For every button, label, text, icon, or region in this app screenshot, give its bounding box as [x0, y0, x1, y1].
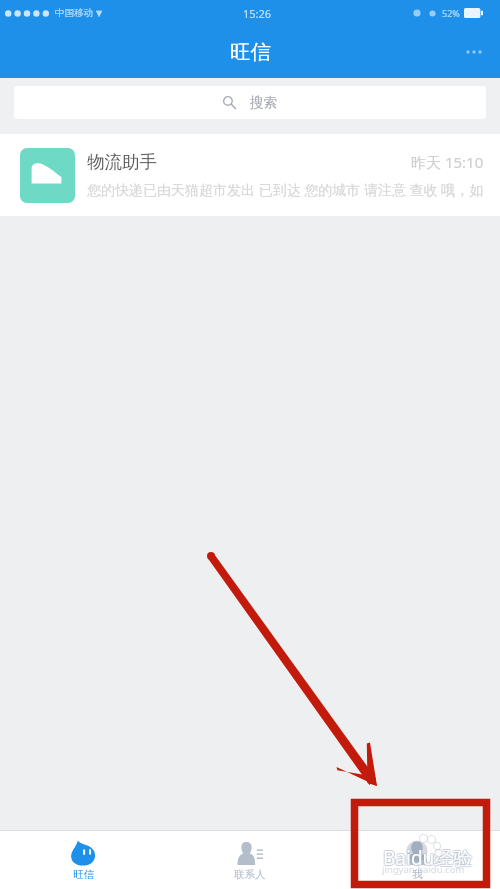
- button[interactable]: 搜索: [14, 86, 486, 119]
- staticText: 15:26: [243, 6, 272, 21]
- staticText: Baidu经验: [384, 846, 474, 872]
- staticText: Baidu经验: [383, 846, 473, 872]
- staticText: 搜索: [250, 94, 277, 111]
- staticText: 昨天 15:10: [411, 152, 484, 172]
- staticText: Baidu经验: [383, 845, 473, 871]
- staticText: ▼: [96, 9, 103, 18]
- button[interactable]: 旺信: [0, 830, 166, 889]
- button[interactable]: 我: [333, 830, 500, 889]
- staticText: 旺信: [73, 868, 94, 881]
- button[interactable]: 联系人: [166, 830, 333, 889]
- staticText: Baidu经验: [382, 845, 472, 871]
- staticText: Baidu经验: [384, 845, 474, 871]
- button[interactable]: 物流助手: [0, 134, 500, 216]
- staticText: 我: [412, 868, 423, 881]
- staticText: jingyan.baidu.com: [382, 863, 465, 876]
- staticText: 52%: [442, 7, 460, 19]
- staticText: Baidu经验: [382, 844, 472, 870]
- staticText: 旺信: [230, 39, 271, 65]
- staticText: 联系人: [234, 868, 266, 881]
- staticText: 中国移动: [55, 7, 93, 19]
- staticText: Baidu经验: [383, 844, 473, 870]
- staticText: 您的快递已由天猫超市发出 已到达 您的城市 请注意 查收 哦，如: [87, 180, 484, 199]
- staticText: Baidu经验: [384, 844, 474, 870]
- staticText: Baidu经验: [382, 846, 472, 872]
- button[interactable]: More options: [456, 34, 492, 70]
- staticText: 物流助手: [87, 151, 157, 173]
